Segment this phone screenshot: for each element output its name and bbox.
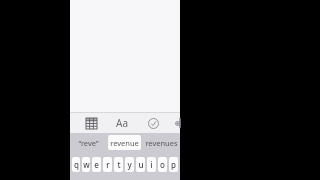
staticText: t [117, 159, 121, 170]
staticText: w [83, 159, 90, 170]
staticText: revenues [145, 138, 178, 148]
staticText: p [171, 159, 176, 170]
button[interactable]: y [125, 157, 134, 172]
staticText: o [160, 159, 165, 170]
staticText: u [138, 159, 144, 170]
staticText: e [94, 159, 99, 170]
button[interactable]: e [92, 157, 101, 172]
button[interactable]: t [114, 157, 123, 172]
button[interactable]: “reve” [72, 135, 104, 150]
button[interactable]: Text format [113, 114, 131, 132]
button[interactable]: q [72, 157, 80, 172]
button[interactable]: revenues [145, 135, 178, 150]
button[interactable]: p [169, 157, 178, 172]
staticText: r [106, 159, 110, 170]
button[interactable]: i [147, 157, 156, 172]
staticText: “reve” [78, 138, 99, 148]
staticText: Aa [116, 116, 128, 130]
staticText: y [127, 159, 132, 170]
button[interactable]: r [103, 157, 112, 172]
button[interactable]: revenue [108, 135, 141, 150]
button[interactable]: o [158, 157, 167, 172]
button[interactable]: Check [144, 114, 162, 132]
staticText: i [150, 159, 153, 170]
button[interactable]: u [136, 157, 145, 172]
staticText: revenue [110, 138, 139, 148]
button[interactable]: Table [82, 114, 100, 132]
button[interactable]: w [82, 157, 90, 172]
button[interactable]: Insert [175, 114, 180, 132]
staticText: q [74, 159, 79, 170]
